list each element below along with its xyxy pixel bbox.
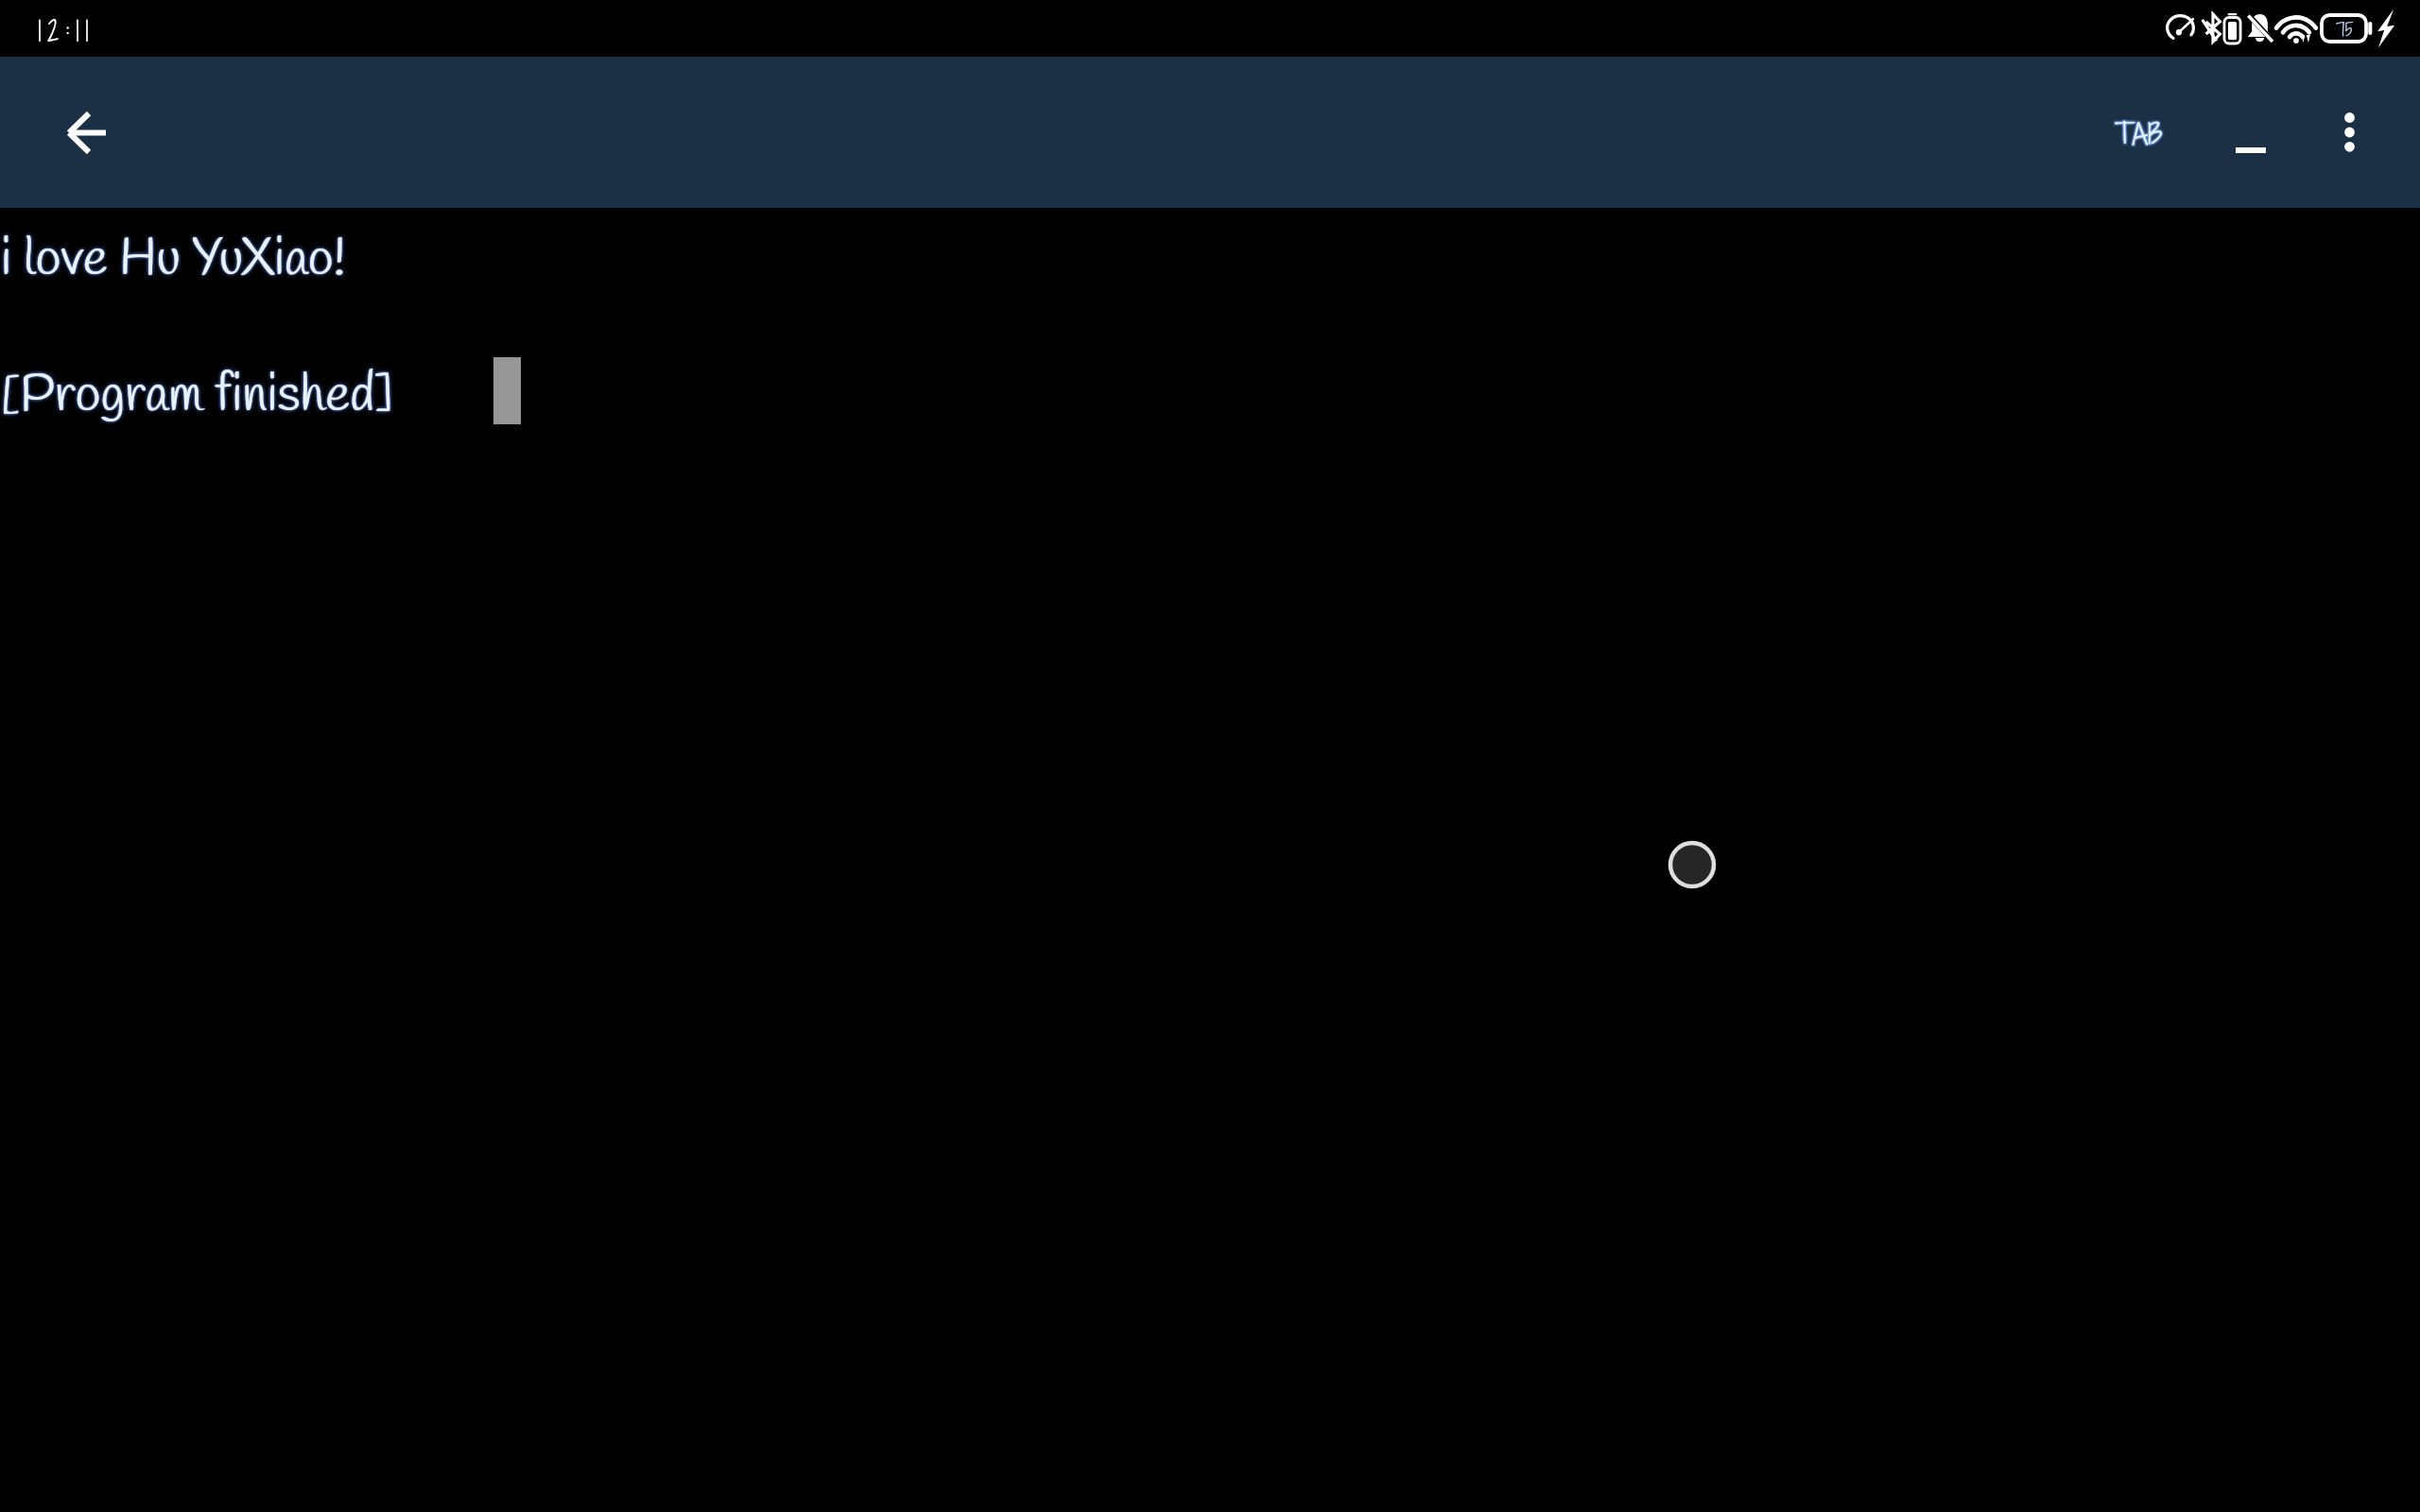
staticText: i love Hu YuXiao!	[1, 225, 346, 294]
staticText: [Program finished]	[0, 362, 391, 431]
staticText: [Program finished]	[5, 358, 397, 427]
staticText: TAB	[2116, 114, 2164, 153]
staticText: [Program finished]	[0, 365, 390, 434]
staticText: [Program finished]	[3, 360, 395, 429]
staticText: i love Hu YuXiao!	[0, 226, 342, 295]
staticText: TAB	[2113, 113, 2161, 152]
staticText: [Program finished]	[1, 359, 393, 428]
staticText: i love Hu YuXiao!	[1, 227, 346, 296]
staticText: i love Hu YuXiao!	[1, 229, 346, 298]
staticText: TAB	[2115, 115, 2163, 154]
staticText: [Program finished]	[0, 364, 391, 433]
staticText: [Program finished]	[1, 358, 393, 427]
staticText: i love Hu YuXiao!	[0, 223, 343, 292]
staticText: i love Hu YuXiao!	[2, 225, 347, 294]
staticText: TAB	[2115, 114, 2163, 153]
staticText: [Program finished]	[0, 360, 391, 429]
staticText: [Program finished]	[0, 362, 390, 431]
staticText: TAB	[2114, 116, 2162, 155]
staticText: i love Hu YuXiao!	[0, 226, 344, 295]
staticText: TAB	[2117, 113, 2165, 152]
staticText: TAB	[2115, 116, 2163, 155]
staticText: [Program finished]	[1, 362, 393, 431]
staticText: [Program finished]	[5, 362, 397, 431]
staticText: [Program finished]	[2, 363, 394, 432]
staticText: i love Hu YuXiao!	[4, 226, 349, 295]
staticText: [Program finished]	[2, 362, 394, 431]
staticText: i love Hu YuXiao!	[1, 223, 346, 292]
staticText: [Program finished]	[2, 361, 394, 430]
staticText: [Program finished]	[3, 362, 395, 431]
staticText: [Program finished]	[0, 362, 389, 431]
staticText: [Program finished]	[1, 361, 393, 430]
staticText: i love Hu YuXiao!	[3, 226, 348, 295]
staticText: TAB	[2113, 115, 2161, 154]
staticText: [Program finished]	[1, 366, 393, 435]
staticText: [Program finished]	[3, 364, 395, 433]
staticText: [Program finished]	[4, 365, 396, 434]
staticText: [Program finished]	[0, 362, 392, 431]
staticText: TAB	[2115, 113, 2163, 152]
staticText: TAB	[2117, 117, 2165, 156]
staticText: [Program finished]	[0, 358, 389, 427]
staticText: 12:11	[38, 12, 95, 51]
staticText: i love Hu YuXiao!	[3, 228, 348, 297]
staticText: i love Hu YuXiao!	[0, 230, 342, 299]
button[interactable]: Back	[66, 113, 106, 152]
staticText: i love Hu YuXiao!	[1, 224, 346, 293]
staticText: [Program finished]	[0, 363, 392, 432]
staticText: i love Hu YuXiao!	[0, 228, 344, 297]
staticText: i love Hu YuXiao!	[0, 226, 343, 295]
staticText: [Program finished]	[1, 364, 393, 433]
staticText: i love Hu YuXiao!	[0, 226, 345, 295]
staticText: TAB	[2115, 117, 2163, 156]
staticText: i love Hu YuXiao!	[5, 230, 350, 299]
staticText: TAB	[2114, 115, 2162, 154]
staticText: i love Hu YuXiao!	[1, 222, 346, 291]
staticText: i love Hu YuXiao!	[0, 225, 345, 294]
staticText: i love Hu YuXiao!	[1, 230, 346, 299]
button[interactable]: Scroll handle	[1667, 839, 1718, 890]
staticText: [Program finished]	[5, 366, 397, 435]
button[interactable]: Minimize	[2209, 93, 2292, 176]
staticText: i love Hu YuXiao!	[3, 224, 348, 293]
staticText: [Program finished]	[1, 363, 393, 432]
staticText: i love Hu YuXiao!	[1, 228, 346, 297]
staticText: i love Hu YuXiao!	[0, 229, 343, 298]
staticText: [Program finished]	[0, 361, 392, 430]
staticText: [Program finished]	[1, 360, 393, 429]
staticText: i love Hu YuXiao!	[2, 227, 347, 296]
staticText: i love Hu YuXiao!	[0, 224, 344, 293]
staticText: i love Hu YuXiao!	[2, 226, 347, 295]
staticText: [Program finished]	[1, 365, 393, 434]
staticText: TAB	[2114, 114, 2162, 153]
staticText: TAB	[2117, 115, 2165, 154]
staticText: TAB	[2113, 117, 2161, 156]
button[interactable]: More options	[2308, 93, 2391, 176]
staticText: i love Hu YuXiao!	[4, 229, 349, 298]
staticText: [Program finished]	[4, 359, 396, 428]
staticText: [Program finished]	[4, 362, 396, 431]
staticText: i love Hu YuXiao!	[5, 226, 350, 295]
button[interactable]: TAB	[2098, 95, 2179, 173]
staticText: i love Hu YuXiao!	[1, 226, 346, 295]
staticText: [Program finished]	[0, 359, 390, 428]
staticText: i love Hu YuXiao!	[5, 222, 350, 291]
staticText: i love Hu YuXiao!	[0, 222, 342, 291]
staticText: [Program finished]	[0, 366, 389, 435]
staticText: i love Hu YuXiao!	[0, 227, 345, 296]
staticText: 75	[2336, 16, 2354, 43]
staticText: i love Hu YuXiao!	[4, 223, 349, 292]
staticText: TAB	[2116, 115, 2164, 154]
staticText: TAB	[2116, 116, 2164, 155]
